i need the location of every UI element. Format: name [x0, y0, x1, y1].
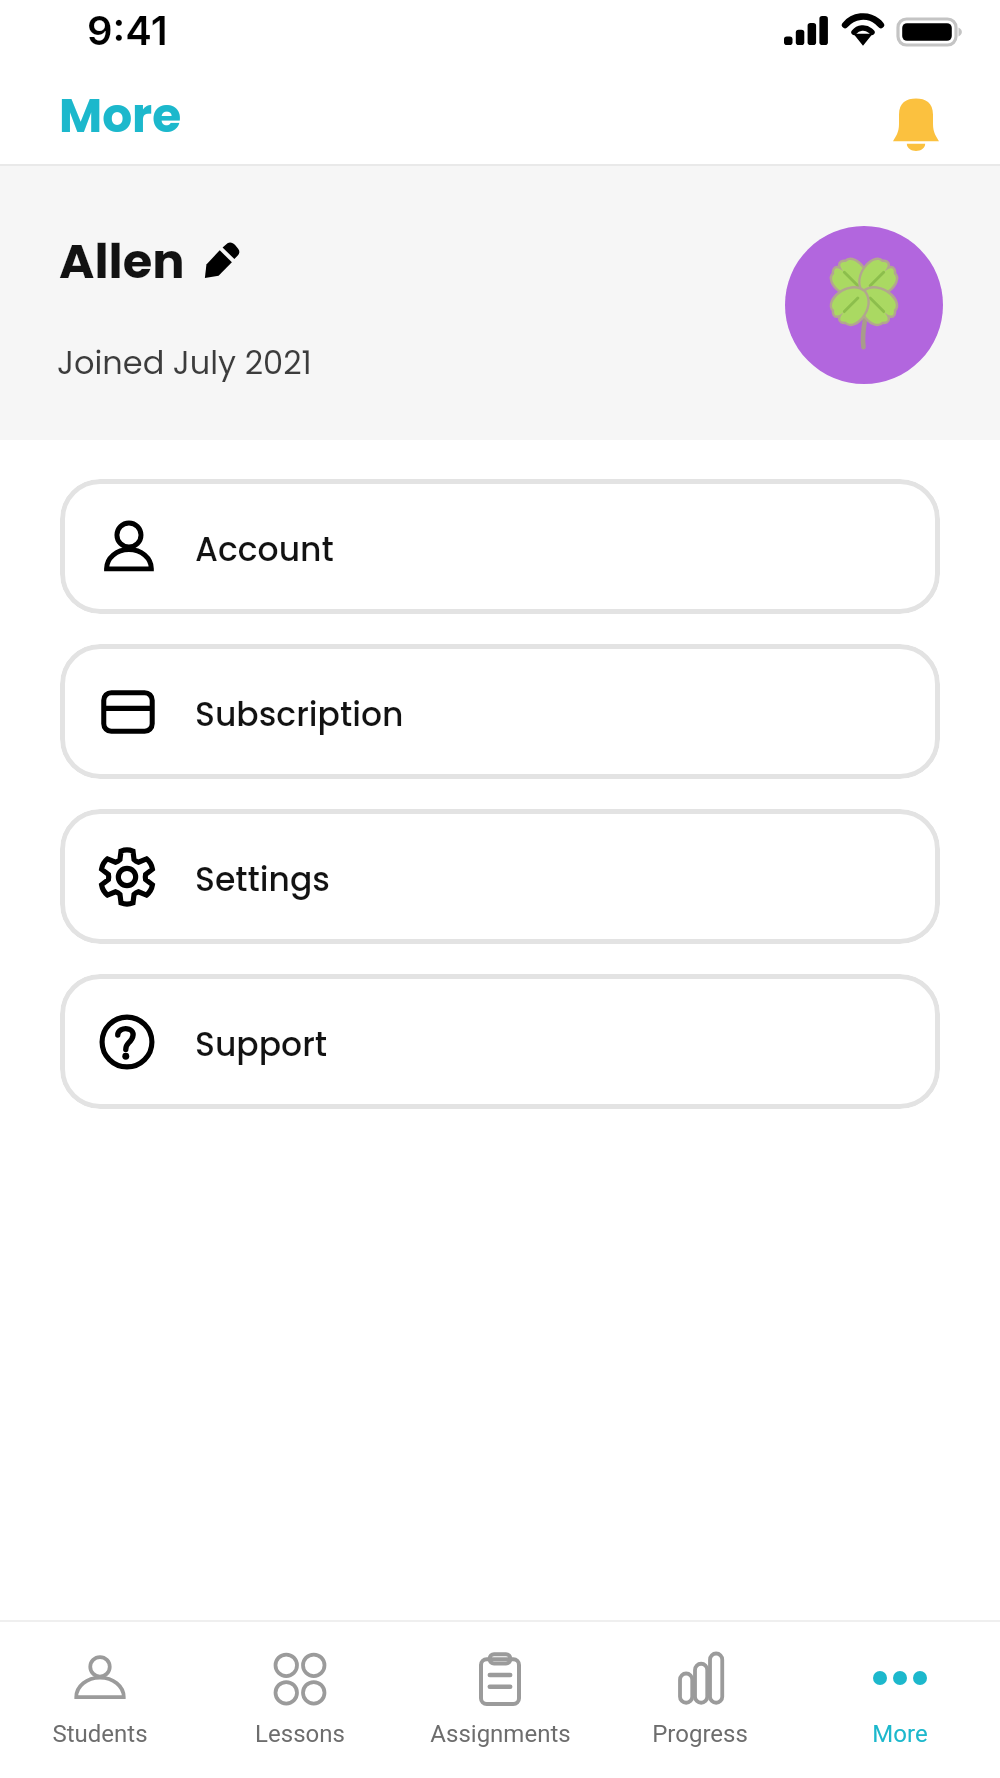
button[interactable]: Progress	[600, 1622, 800, 1748]
staticText: Assignments	[430, 1720, 571, 1748]
staticText: Progress	[652, 1720, 748, 1748]
button[interactable]: Profile picture	[785, 226, 943, 384]
staticText: 9:41	[87, 6, 168, 54]
staticText: Settings	[195, 856, 330, 902]
staticText: More	[872, 1720, 928, 1748]
button[interactable]: Edit name	[203, 242, 241, 280]
staticText: Students	[52, 1720, 148, 1748]
staticText: Subscription	[195, 691, 404, 737]
button[interactable]: Students	[0, 1622, 200, 1748]
button[interactable]: Support	[60, 974, 940, 1109]
button[interactable]: Assignments	[400, 1622, 600, 1748]
button[interactable]: Subscription	[60, 644, 940, 779]
staticText: Joined July 2021	[57, 340, 312, 385]
staticText: Support	[195, 1021, 328, 1067]
button[interactable]: Account	[60, 479, 940, 614]
button[interactable]: Notifications	[882, 88, 950, 156]
staticText: Lessons	[255, 1720, 345, 1748]
button[interactable]: Settings	[60, 809, 940, 944]
staticText: Account	[195, 526, 334, 572]
staticText: More	[59, 83, 182, 149]
button[interactable]: Lessons	[200, 1622, 400, 1748]
button[interactable]: More	[800, 1622, 1000, 1748]
staticText: Allen	[59, 228, 185, 295]
